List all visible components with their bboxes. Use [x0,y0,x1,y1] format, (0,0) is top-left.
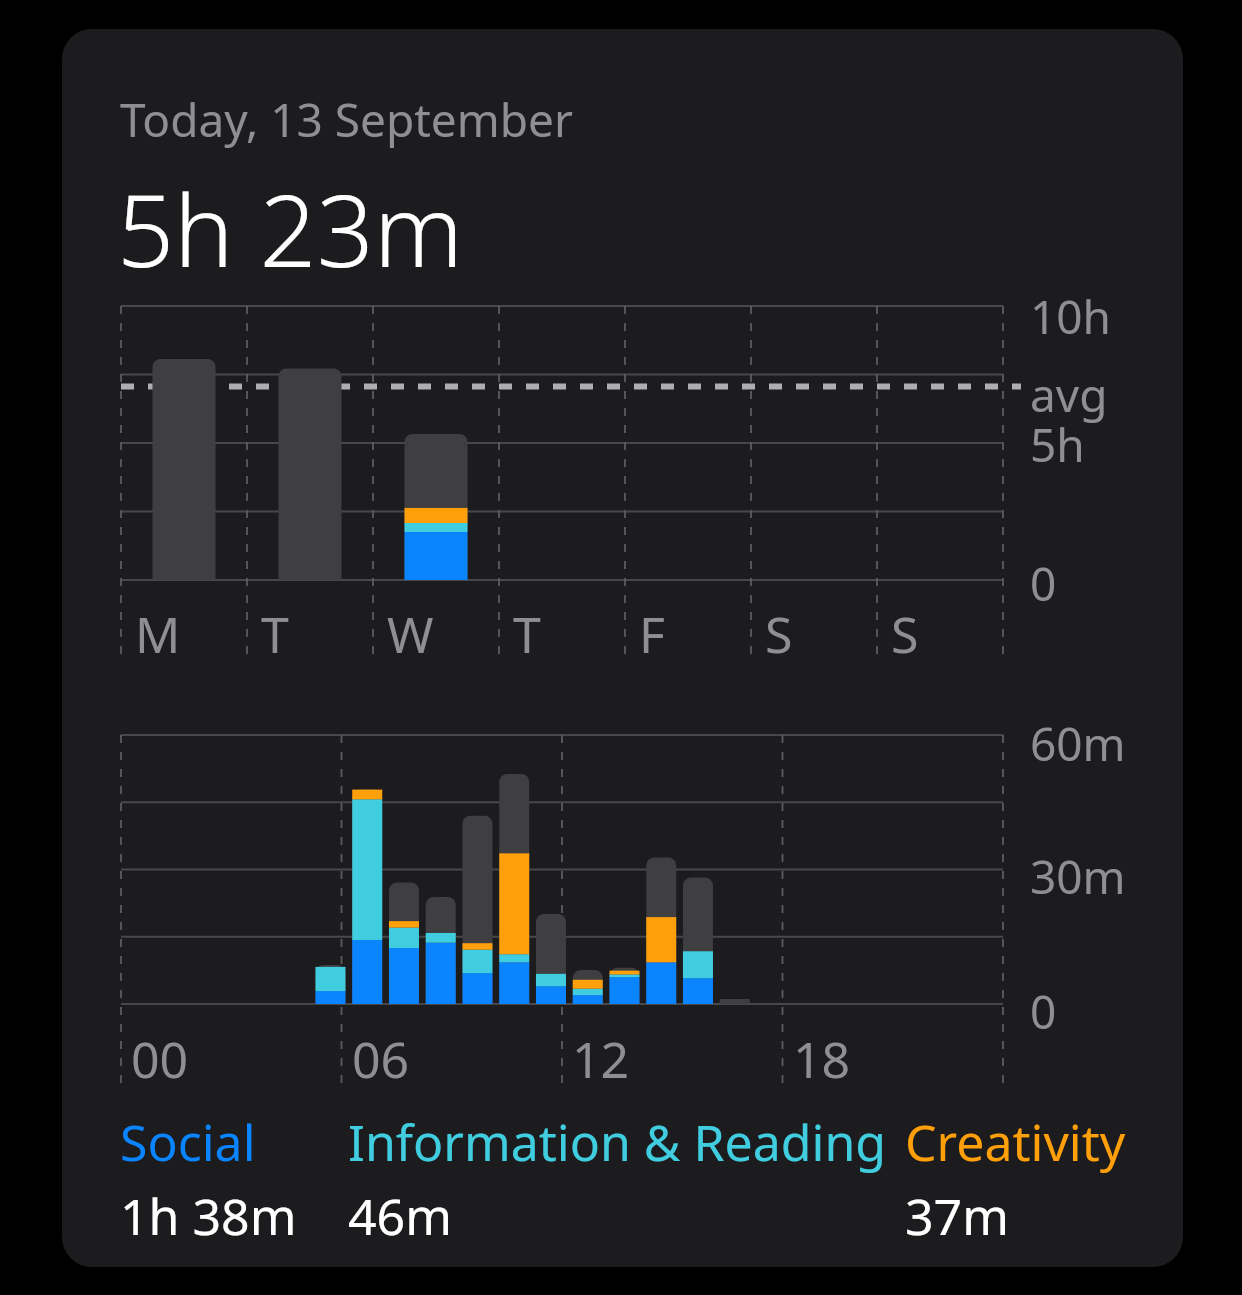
staticText: Information & Reading [348,1108,887,1176]
staticText: T [261,600,289,668]
staticText: 10h [1030,285,1112,348]
button[interactable] [62,29,1183,1267]
staticText: 12 [572,1025,630,1093]
staticText: S [765,600,793,668]
staticText: S [891,600,919,668]
staticText: 06 [352,1025,410,1093]
staticText: 5h 23m [117,160,464,296]
staticText: 60m [1030,712,1126,775]
staticText: Today, 13 September [120,88,574,151]
button[interactable]: Creativity [905,1108,1126,1176]
staticText: F [639,600,665,668]
button[interactable]: 46m [348,1182,452,1250]
staticText: M [135,600,181,668]
staticText: 46m [348,1182,452,1250]
button[interactable]: Information & Reading [348,1108,887,1176]
button[interactable]: 1h 38m [120,1182,297,1250]
staticText: T [513,600,541,668]
staticText: 00 [131,1025,189,1093]
staticText: 0 [1030,980,1057,1043]
button[interactable]: Social [120,1108,256,1176]
staticText: 37m [905,1182,1009,1250]
staticText: avg [1030,363,1108,426]
staticText: 30m [1030,845,1126,908]
staticText: Creativity [905,1108,1126,1176]
staticText: W [387,600,434,668]
staticText: 18 [793,1025,851,1093]
staticText: Social [120,1108,256,1176]
button[interactable]: 37m [905,1182,1009,1250]
staticText: 5h [1030,413,1085,476]
staticText: 0 [1030,552,1057,615]
staticText: 1h 38m [120,1182,297,1250]
